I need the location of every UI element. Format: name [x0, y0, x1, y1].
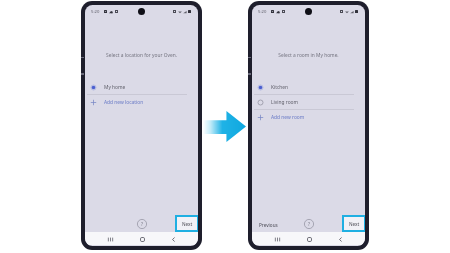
button[interactable]: My home [85, 80, 198, 94]
button[interactable]: Back [334, 233, 346, 245]
button[interactable]: Help [304, 219, 314, 229]
button[interactable]: Previous [257, 220, 280, 230]
button[interactable]: Living room [252, 95, 365, 109]
staticText: ? [308, 221, 310, 227]
staticText: Previous [259, 222, 278, 228]
staticText: Add new location [104, 99, 144, 106]
staticText: Next [349, 221, 360, 227]
staticText: Select a location for your Oven. [85, 52, 198, 59]
button[interactable]: Recents [271, 233, 283, 245]
button[interactable]: Add new location [85, 95, 198, 109]
button[interactable]: Recents [104, 233, 116, 245]
staticText: ? [141, 221, 143, 227]
staticText: 5:20 [258, 9, 267, 15]
button[interactable]: Home [303, 233, 315, 245]
staticText: Select a room in My home. [252, 52, 365, 59]
staticText: Add new room [271, 114, 305, 121]
staticText: Kitchen [271, 84, 289, 91]
button[interactable]: Kitchen [252, 80, 365, 94]
staticText: 5:20 [91, 9, 100, 15]
staticText: My home [104, 84, 126, 91]
button[interactable]: Help [137, 219, 147, 229]
button[interactable]: Next [177, 217, 197, 230]
staticText: Next [182, 221, 193, 227]
button[interactable]: Home [136, 233, 148, 245]
button[interactable]: Add new room [252, 110, 365, 124]
button[interactable]: Back [167, 233, 179, 245]
staticText: Living room [271, 99, 299, 106]
button[interactable]: Next [344, 217, 364, 230]
